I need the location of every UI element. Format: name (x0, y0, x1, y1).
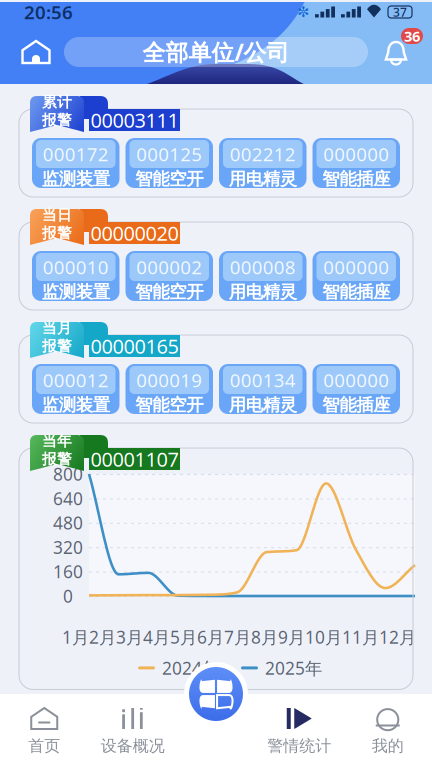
staticText: 000125 (136, 142, 202, 166)
staticText: 8月 (251, 625, 278, 648)
staticText: 4月 (143, 625, 170, 648)
button[interactable]: 扫码 (184, 662, 248, 726)
staticText: 000000 (323, 142, 389, 166)
staticText: 000134 (230, 368, 296, 392)
staticText: 2024年 (162, 656, 219, 679)
staticText: 当月 (42, 319, 72, 337)
button[interactable]: 000134 (219, 364, 306, 414)
button[interactable]: 设备概况 (88, 694, 177, 768)
button[interactable]: 000010 (32, 251, 119, 301)
staticText: 11月 (342, 625, 379, 648)
button[interactable]: 警情统计 (255, 694, 343, 768)
staticText: 首页 (28, 736, 60, 756)
staticText: 000012 (43, 368, 109, 392)
staticText: 12月 (379, 625, 416, 648)
staticText: 7月 (224, 625, 251, 648)
staticText: 9月 (278, 625, 305, 648)
staticText: 报警 (42, 224, 72, 242)
staticText: 000008 (230, 255, 296, 279)
staticText: 000172 (43, 142, 109, 166)
staticText: 000010 (43, 255, 109, 279)
staticText: 用电精灵 (229, 394, 297, 416)
staticText: 20:56 (24, 0, 73, 24)
staticText: 320 (53, 536, 83, 559)
staticText: 智能插座 (322, 168, 390, 190)
staticText: 640 (53, 487, 83, 510)
staticText: 2025年 (265, 656, 322, 679)
button[interactable]: 000002 (125, 251, 213, 301)
staticText: 000019 (136, 368, 202, 392)
staticText: 002212 (230, 142, 296, 166)
staticText: 智能插座 (322, 281, 390, 303)
staticText: 00000165 (90, 333, 178, 359)
staticText: 智能空开 (135, 281, 203, 303)
button[interactable]: 000000 (312, 251, 400, 301)
staticText: 5月 (170, 625, 197, 648)
staticText: 全部单位/公司 (142, 37, 289, 67)
staticText: 用电精灵 (229, 281, 297, 303)
staticText: 当年 (42, 432, 72, 450)
staticText: 0 (63, 584, 73, 607)
button[interactable]: 首页 (0, 694, 88, 768)
staticText: 36 (404, 26, 420, 46)
staticText: 2月 (89, 625, 116, 648)
staticText: 智能空开 (135, 168, 203, 190)
staticText: 当日 (42, 206, 72, 224)
button[interactable]: 我的 (343, 694, 432, 768)
button[interactable]: 000125 (125, 138, 213, 188)
staticText: 监测装置 (42, 168, 110, 190)
staticText: 监测装置 (42, 281, 110, 303)
staticText: 监测装置 (42, 394, 110, 416)
staticText: 37 (393, 4, 407, 20)
staticText: 00003111 (90, 107, 178, 133)
button[interactable]: 000000 (312, 364, 400, 414)
button[interactable]: 000172 (32, 138, 119, 188)
staticText: 报警 (42, 337, 72, 355)
staticText: 00001107 (90, 446, 178, 472)
staticText: 3月 (116, 625, 143, 648)
staticText: 800 (53, 462, 83, 485)
staticText: 用电精灵 (229, 168, 297, 190)
staticText: 1月 (62, 625, 89, 648)
staticText: 00000020 (90, 220, 178, 246)
staticText: 智能插座 (322, 394, 390, 416)
staticText: 000002 (136, 255, 202, 279)
staticText: 报警 (42, 450, 72, 468)
staticText: 警情统计 (267, 736, 331, 756)
staticText: 我的 (372, 736, 404, 756)
button[interactable]: 通知 (374, 30, 418, 74)
staticText: 累计 (42, 93, 72, 111)
staticText: 智能空开 (135, 394, 203, 416)
button[interactable]: 000008 (219, 251, 306, 301)
staticText: 设备概况 (101, 736, 165, 756)
staticText: 6月 (197, 625, 224, 648)
staticText: 10月 (305, 625, 342, 648)
button[interactable]: 全部单位/公司 (64, 37, 368, 67)
staticText: 160 (53, 560, 83, 583)
staticText: ✼ (297, 4, 309, 20)
staticText: 000000 (323, 368, 389, 392)
staticText: 000000 (323, 255, 389, 279)
button[interactable]: 000000 (312, 138, 400, 188)
staticText: 报警 (42, 111, 72, 129)
button[interactable]: 000012 (32, 364, 119, 414)
button[interactable]: 002212 (219, 138, 306, 188)
button[interactable]: 首页 (14, 30, 58, 74)
button[interactable]: 000019 (125, 364, 213, 414)
staticText: 480 (53, 511, 83, 534)
